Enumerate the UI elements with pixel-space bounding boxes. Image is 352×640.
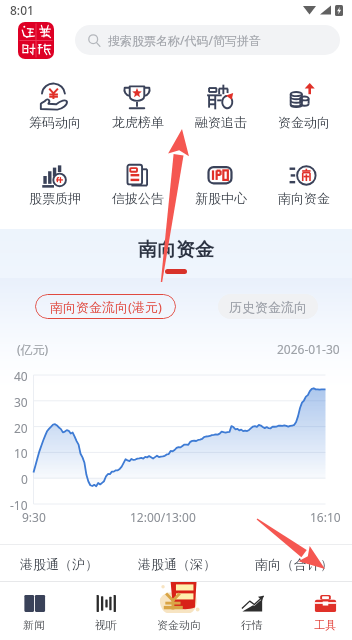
staticText: 8:01 — [10, 2, 34, 18]
staticText: 新股中心 — [195, 190, 247, 206]
button[interactable]: 行情 — [218, 582, 286, 640]
button[interactable]: 证券时报 — [18, 22, 54, 59]
staticText: 筹码动向 — [29, 114, 81, 130]
staticText: 新闻 — [23, 618, 45, 632]
staticText: 港股通（沪） — [20, 556, 98, 572]
staticText: 12:00/13:00 — [130, 509, 196, 525]
staticText: 南向资金 — [138, 238, 214, 262]
button[interactable] — [262, 158, 345, 207]
staticText: 南向（合计） — [255, 556, 333, 572]
staticText: 信披公告 — [112, 190, 164, 206]
staticText: 资金动向 — [157, 618, 201, 632]
staticText: 9:30 — [22, 509, 46, 525]
staticText: 龙虎榜单 — [112, 114, 164, 130]
button[interactable]: 南向（合计） — [235, 545, 352, 582]
button[interactable]: 资金动向 — [145, 582, 213, 640]
staticText: 行情 — [241, 618, 263, 632]
staticText: 16:10 — [310, 509, 341, 525]
staticText: 资金动向 — [278, 114, 330, 130]
staticText: 40 — [14, 368, 28, 384]
staticText: 20 — [14, 420, 28, 436]
staticText: 南向资金流向(港元) — [50, 298, 162, 316]
button[interactable] — [179, 158, 262, 207]
button[interactable]: 搜索股票名称/代码/简写拼音 — [75, 25, 340, 55]
button[interactable] — [96, 158, 179, 207]
button[interactable] — [179, 79, 262, 128]
staticText: 视听 — [95, 618, 117, 632]
button[interactable] — [13, 158, 96, 207]
staticText: 0 — [21, 471, 28, 487]
button[interactable] — [96, 79, 179, 128]
button[interactable]: 南向资金流向(港元) — [35, 294, 176, 319]
staticText: 股票质押 — [29, 190, 81, 206]
button[interactable] — [262, 79, 345, 128]
button[interactable] — [13, 79, 96, 128]
button[interactable]: 港股通（沪） — [0, 545, 118, 582]
staticText: 2026-01-30 — [277, 341, 340, 357]
staticText: 工具 — [314, 618, 336, 632]
button[interactable]: 新闻 — [0, 582, 68, 640]
staticText: 融资追击 — [195, 114, 247, 130]
staticText: 港股通（深） — [138, 556, 216, 572]
staticText: 30 — [14, 394, 28, 410]
staticText: 搜索股票名称/代码/简写拼音 — [108, 32, 261, 48]
button[interactable]: 工具 — [291, 582, 352, 640]
staticText: 历史资金流向 — [229, 299, 307, 315]
button[interactable]: 视听 — [72, 582, 140, 640]
staticText: (亿元) — [17, 341, 49, 357]
button[interactable]: 港股通（深） — [118, 545, 235, 582]
staticText: -10 — [10, 497, 28, 513]
button[interactable]: 历史资金流向 — [218, 294, 318, 319]
staticText: 10 — [14, 445, 28, 461]
staticText: 南向资金 — [278, 190, 330, 206]
